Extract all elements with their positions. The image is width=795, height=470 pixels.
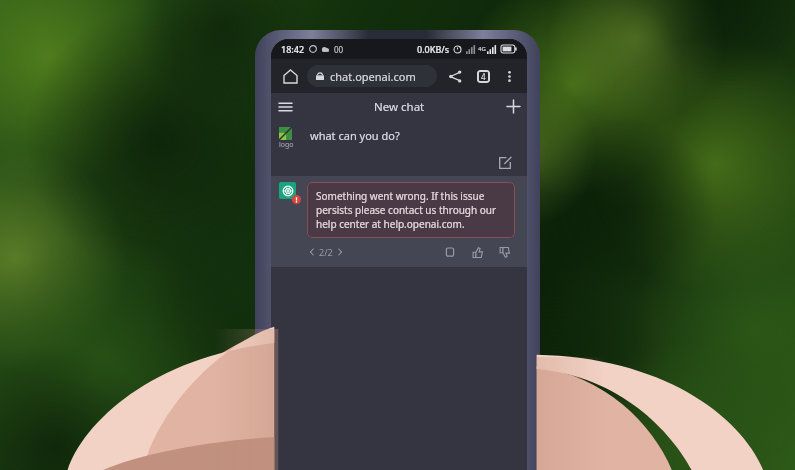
staticText: 18:42 <box>281 43 305 55</box>
button[interactable]: New chat <box>499 93 527 120</box>
button[interactable]: Edit message <box>495 153 515 173</box>
button[interactable]: Home <box>279 65 301 87</box>
staticText: 2/2 <box>319 246 333 258</box>
staticText: logo <box>279 140 294 150</box>
staticText: what can you do? <box>310 128 400 143</box>
staticText: New chat <box>374 99 425 115</box>
staticText: 4 <box>481 71 486 82</box>
staticText: chat.openai.com <box>330 69 416 84</box>
button[interactable]: More options <box>499 66 519 86</box>
button[interactable]: Bad response <box>495 243 513 261</box>
button[interactable]: Menu <box>271 93 299 120</box>
button[interactable]: Good response <box>468 243 486 261</box>
staticText: Something went wrong. If this issue pers… <box>316 189 506 231</box>
button[interactable]: chat.openai.com <box>307 65 437 87</box>
staticText: 0⁠0 <box>334 44 344 55</box>
button[interactable]: Share <box>445 66 465 86</box>
staticText: 4G <box>478 45 486 53</box>
button[interactable]: 2/2 <box>307 244 345 260</box>
button[interactable]: Tabs <box>473 66 493 86</box>
button[interactable]: Copy <box>441 243 459 261</box>
staticText: 0.0KB/s <box>417 43 450 55</box>
